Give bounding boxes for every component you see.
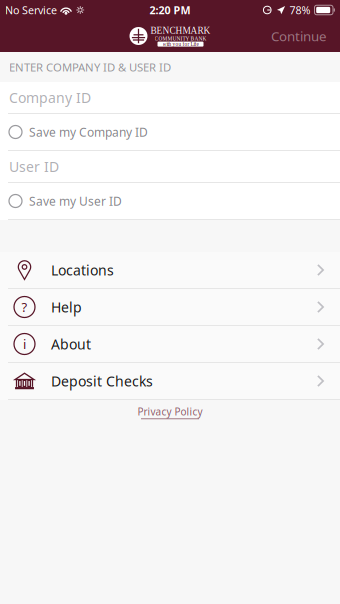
staticText: COMMUNITY BANK: [154, 36, 206, 42]
button[interactable]: Deposit Checks: [0, 363, 340, 399]
button[interactable]: ?: [0, 289, 340, 325]
staticText: i: [23, 335, 26, 353]
staticText: ENTER COMPANY ID & USER ID: [9, 59, 171, 75]
button[interactable]: i: [0, 326, 340, 362]
staticText: Locations: [51, 260, 114, 280]
staticText: About: [51, 334, 91, 354]
button[interactable]: Save my Company ID: [0, 114, 340, 151]
button[interactable]: Locations: [0, 252, 340, 288]
staticText: Privacy Policy: [137, 405, 202, 418]
staticText: No Service: [5, 3, 57, 17]
staticText: 2:20 PM: [149, 3, 190, 17]
staticText: Company ID: [9, 88, 91, 107]
button[interactable]: Continue: [261, 20, 340, 52]
staticText: 78%: [289, 3, 310, 17]
staticText: Deposit Checks: [51, 371, 153, 391]
staticText: ?: [21, 298, 27, 316]
button[interactable]: Privacy Policy: [137, 400, 202, 424]
staticText: BENCHMARK: [150, 25, 210, 36]
button[interactable]: Save my User ID: [0, 183, 340, 220]
staticText: with you for Life: [162, 41, 198, 47]
staticText: Save my Company ID: [29, 124, 148, 140]
staticText: Help: [51, 297, 82, 317]
staticText: Save my User ID: [29, 193, 122, 209]
staticText: User ID: [9, 157, 59, 176]
staticText: Continue: [271, 27, 327, 45]
